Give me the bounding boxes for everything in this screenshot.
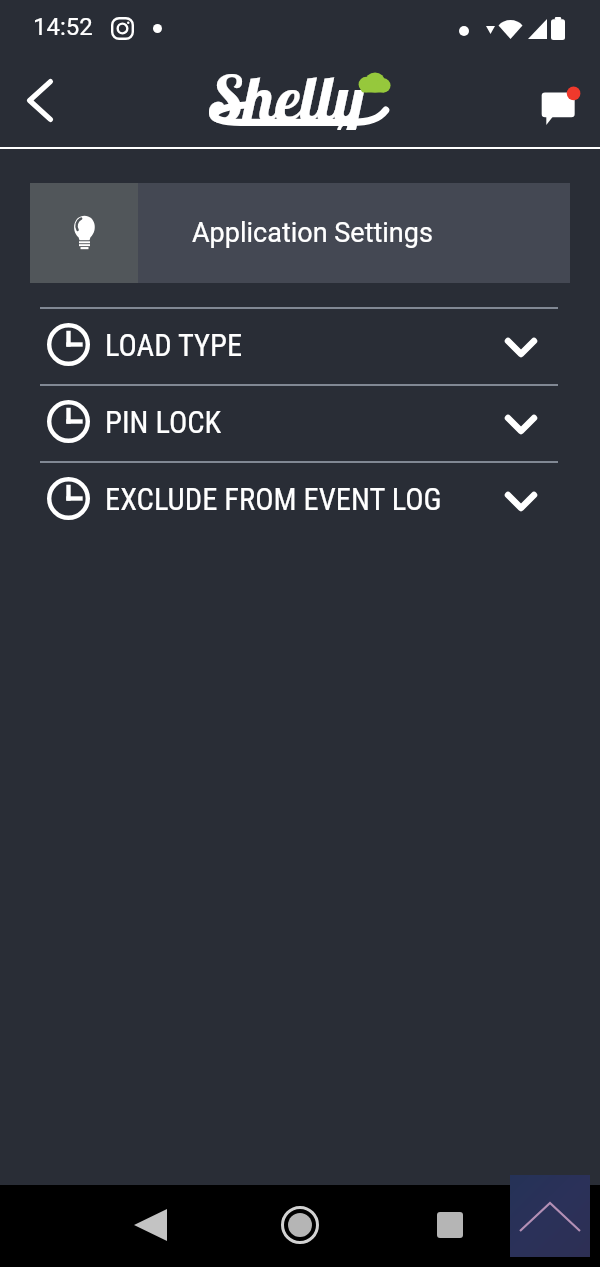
- staticText: EXCLUDE FROM EVENT LOG: [105, 482, 442, 518]
- button[interactable]: LOAD TYPE: [0, 307, 600, 384]
- button[interactable]: Expand overlay: [510, 1175, 590, 1257]
- button[interactable]: Messages: [523, 73, 585, 135]
- staticText: Shelly: [209, 58, 365, 130]
- staticText: Application Settings: [192, 217, 433, 249]
- button[interactable]: Home: [268, 1193, 332, 1257]
- button[interactable]: Back: [118, 1193, 182, 1257]
- staticText: LOAD TYPE: [105, 328, 243, 364]
- staticText: PIN LOCK: [105, 405, 222, 441]
- button[interactable]: Recent apps: [418, 1193, 482, 1257]
- button[interactable]: Application Settings: [30, 183, 570, 283]
- button[interactable]: PIN LOCK: [0, 384, 600, 461]
- button[interactable]: EXCLUDE FROM EVENT LOG: [0, 461, 600, 538]
- button[interactable]: Back: [0, 60, 80, 140]
- staticText: 14:52: [33, 13, 93, 41]
